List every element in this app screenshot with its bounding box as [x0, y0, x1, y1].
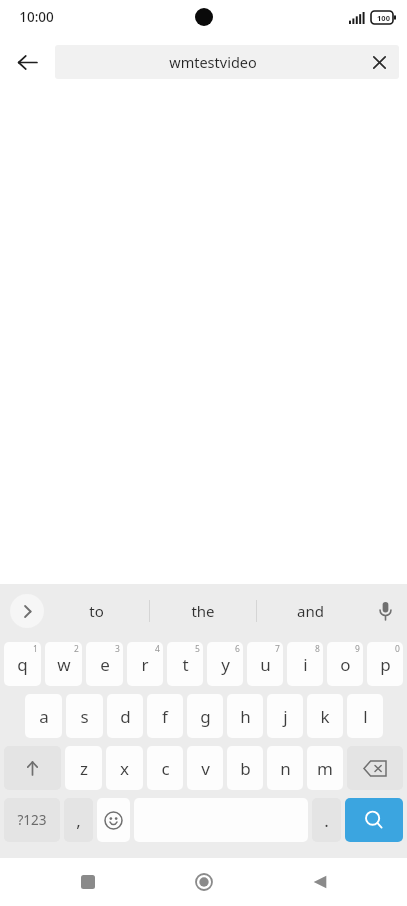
staticText: l	[363, 705, 368, 728]
button[interactable]: o	[327, 642, 363, 686]
button[interactable]: l	[347, 694, 383, 738]
button[interactable]: s	[66, 694, 103, 738]
staticText: z	[80, 757, 88, 780]
staticText: m	[317, 757, 333, 780]
staticText: x	[120, 757, 129, 780]
staticText: o	[340, 653, 351, 676]
button[interactable]: Shift	[4, 746, 61, 790]
staticText: 1	[33, 643, 38, 655]
button[interactable]: v	[187, 746, 223, 790]
staticText: the	[191, 601, 215, 621]
button[interactable]: Back	[0, 34, 55, 90]
staticText: g	[200, 705, 211, 728]
staticText: .	[324, 809, 329, 832]
button[interactable]: c	[147, 746, 183, 790]
button[interactable]: p	[367, 642, 403, 686]
staticText: 100	[377, 13, 390, 23]
button[interactable]: q	[4, 642, 41, 686]
staticText: n	[280, 757, 291, 780]
button[interactable]: a	[25, 694, 62, 738]
staticText: t	[182, 653, 189, 676]
staticText: k	[320, 705, 330, 728]
staticText: h	[240, 705, 251, 728]
button[interactable]: the	[150, 584, 256, 638]
button[interactable]: Clear	[359, 45, 399, 79]
staticText: and	[297, 601, 324, 621]
button[interactable]: More suggestions	[10, 594, 44, 628]
button[interactable]: Back	[291, 858, 349, 906]
staticText: c	[161, 757, 170, 780]
button[interactable]: x	[106, 746, 143, 790]
button[interactable]: Home	[175, 858, 233, 906]
staticText: p	[380, 653, 391, 676]
staticText: i	[303, 653, 308, 676]
staticText: j	[283, 705, 288, 728]
staticText: 3	[115, 643, 120, 655]
button[interactable]: Recents	[59, 858, 117, 906]
button[interactable]: j	[267, 694, 303, 738]
button[interactable]: k	[307, 694, 343, 738]
staticText: 0	[395, 643, 400, 655]
button[interactable]: z	[65, 746, 102, 790]
staticText: 4	[155, 643, 160, 655]
button[interactable]: d	[107, 694, 143, 738]
staticText: 7	[275, 643, 280, 655]
staticText: v	[201, 757, 210, 780]
button[interactable]: w	[45, 642, 82, 686]
button[interactable]: m	[307, 746, 343, 790]
button[interactable]: ?123	[4, 798, 60, 842]
staticText: 9	[355, 643, 360, 655]
button[interactable]: t	[167, 642, 203, 686]
staticText: ?123	[17, 811, 47, 829]
staticText: 2	[74, 643, 79, 655]
button[interactable]: wmtestvideo	[55, 45, 399, 79]
button[interactable]: i	[287, 642, 323, 686]
button[interactable]: h	[227, 694, 263, 738]
staticText: e	[100, 653, 110, 676]
staticText: u	[260, 653, 271, 676]
staticText: w	[57, 653, 71, 676]
staticText: q	[17, 653, 28, 676]
button[interactable]: g	[187, 694, 223, 738]
button[interactable]: comma	[64, 798, 93, 842]
staticText: 10:00	[19, 8, 54, 26]
staticText: d	[120, 705, 131, 728]
staticText: b	[240, 757, 251, 780]
staticText: ,	[76, 809, 81, 832]
button[interactable]: e	[86, 642, 123, 686]
staticText: a	[39, 705, 49, 728]
staticText: to	[89, 601, 104, 621]
button[interactable]: Backspace	[347, 746, 403, 790]
staticText: 6	[235, 643, 240, 655]
staticText: 5	[195, 643, 200, 655]
staticText: y	[221, 653, 230, 676]
button[interactable]: b	[227, 746, 263, 790]
button[interactable]: Search	[345, 798, 403, 842]
button[interactable]: r	[127, 642, 163, 686]
staticText: f	[162, 705, 168, 728]
button[interactable]: period	[312, 798, 341, 842]
button[interactable]: y	[207, 642, 243, 686]
staticText: s	[80, 705, 89, 728]
button[interactable]: f	[147, 694, 183, 738]
button[interactable]: n	[267, 746, 303, 790]
button[interactable]: to	[44, 584, 149, 638]
button[interactable]: and	[257, 584, 363, 638]
staticText: 8	[315, 643, 320, 655]
staticText: wmtestvideo	[67, 52, 359, 72]
button[interactable]: u	[247, 642, 283, 686]
button[interactable]: Voice input	[363, 584, 407, 638]
button[interactable]: Emoji	[97, 798, 130, 842]
staticText: r	[141, 653, 149, 676]
